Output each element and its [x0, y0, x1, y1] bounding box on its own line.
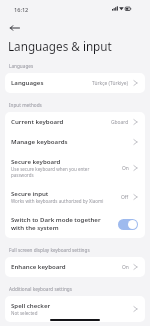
- staticText: Switch to Dark mode together with the sy…: [11, 216, 109, 232]
- staticText: On: [122, 264, 129, 271]
- button[interactable]: Secure keyboard: [5, 152, 145, 184]
- button[interactable]: Manage keyboards: [5, 132, 145, 152]
- staticText: Full screen display keyboard settings: [9, 247, 90, 253]
- button[interactable]: Back: [4, 19, 25, 36]
- button[interactable]: Languages: [5, 73, 145, 93]
- button[interactable]: Current keyboard: [5, 112, 145, 132]
- staticText: Secure input: [11, 190, 49, 198]
- button[interactable]: Switch to Dark mode together with the sy…: [5, 210, 145, 238]
- staticText: Works with keyboards authorized by Xiaom…: [11, 198, 104, 204]
- staticText: Secure keyboard: [11, 158, 61, 166]
- staticText: Languages: [9, 63, 34, 69]
- staticText: Languages & input: [8, 41, 112, 54]
- button[interactable]: Enhance keyboard: [5, 257, 145, 277]
- staticText: Spell checker: [11, 302, 51, 310]
- staticText: Use secure keyboard when you enter passw…: [11, 166, 109, 178]
- staticText: Manage keyboards: [11, 138, 68, 146]
- staticText: 16:12: [14, 6, 29, 14]
- staticText: Off: [121, 194, 129, 201]
- staticText: Not selected: [11, 310, 38, 316]
- staticText: Input methods: [9, 102, 42, 108]
- staticText: Current keyboard: [11, 118, 64, 126]
- staticText: Enhance keyboard: [11, 263, 66, 271]
- staticText: Additional keyboard settings: [9, 286, 72, 292]
- button[interactable]: Spell checker: [5, 296, 145, 322]
- button[interactable]: Secure input: [5, 184, 145, 210]
- staticText: Gboard: [111, 119, 129, 126]
- staticText: Languages: [11, 79, 44, 87]
- staticText: On: [122, 165, 129, 172]
- staticText: Türkçe (Türkiye): [92, 80, 129, 87]
